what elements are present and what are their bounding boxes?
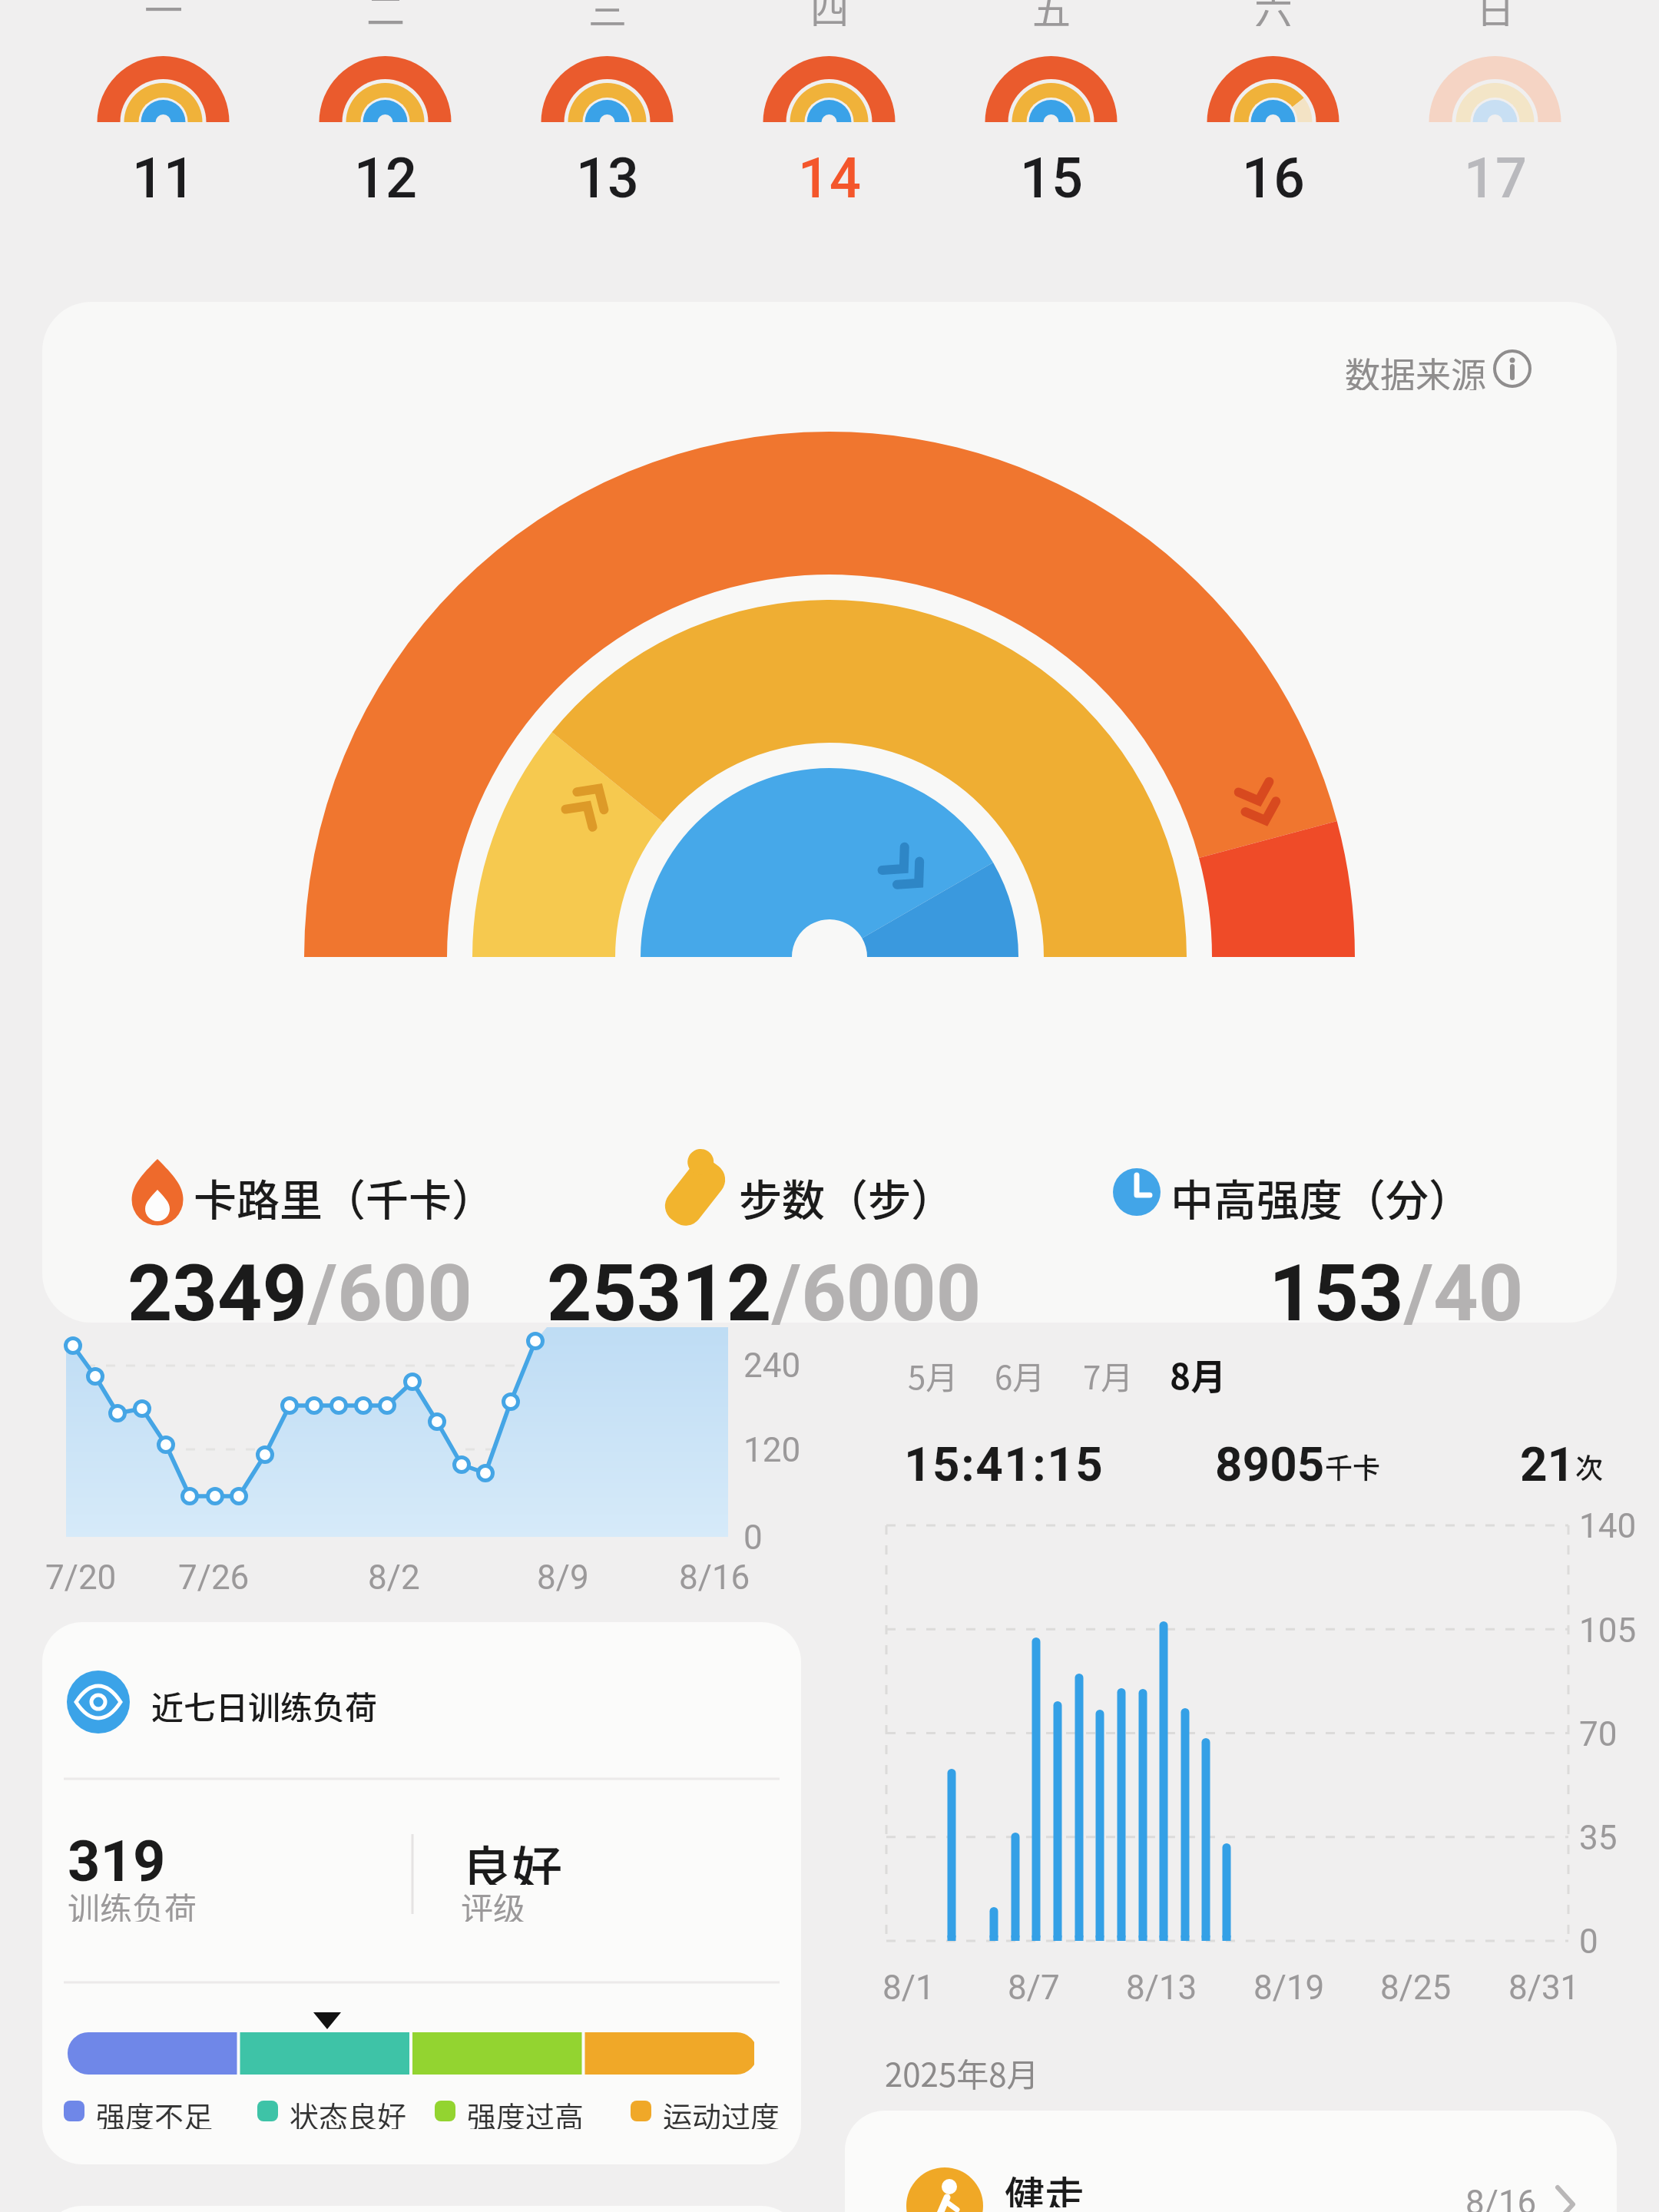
staticText: 运动过度 xyxy=(663,2094,780,2129)
staticText: 8905 xyxy=(1215,1436,1325,1492)
staticText: 15 xyxy=(1020,146,1083,210)
staticText: 140 xyxy=(1579,1506,1637,1545)
staticText: 千卡 xyxy=(1325,1446,1381,1486)
button[interactable] xyxy=(940,0,1162,223)
staticText: 2025年8月 xyxy=(885,2049,1039,2095)
staticText: 一 xyxy=(144,0,183,26)
button[interactable] xyxy=(879,1344,987,1406)
staticText: 14 xyxy=(798,146,861,210)
staticText: 8/16 xyxy=(679,1558,750,1598)
staticText: 训练负荷 xyxy=(68,1883,197,1922)
staticText: 21 xyxy=(1520,1436,1575,1492)
staticText: 0 xyxy=(743,1518,763,1556)
staticText: 中高强度（分） xyxy=(1171,1166,1472,1220)
staticText: 12 xyxy=(354,146,417,210)
staticText: /40 xyxy=(1404,1247,1524,1339)
button[interactable] xyxy=(718,0,940,223)
staticText: 16 xyxy=(1242,146,1305,210)
staticText: 五 xyxy=(1032,0,1071,26)
staticText: 8/31 xyxy=(1508,1968,1580,2008)
staticText: 11 xyxy=(132,146,195,210)
button[interactable] xyxy=(274,0,496,223)
staticText: 卡路里（千卡） xyxy=(194,1166,495,1220)
staticText: 六 xyxy=(1254,0,1293,26)
button[interactable] xyxy=(1306,338,1544,399)
staticText: 8月 xyxy=(1170,1349,1227,1399)
staticText: 2349 xyxy=(127,1247,308,1339)
staticText: 三 xyxy=(588,0,627,26)
staticText: /6000 xyxy=(772,1247,982,1339)
staticText: 319 xyxy=(68,1828,166,1886)
staticText: 7月 xyxy=(1083,1352,1134,1399)
staticText: 近七日训练负荷 xyxy=(151,1682,378,1722)
staticText: 8/16 xyxy=(1465,2183,1537,2212)
staticText: 强度过高 xyxy=(467,2094,584,2129)
button[interactable] xyxy=(1162,0,1384,223)
staticText: 25312 xyxy=(547,1247,772,1339)
staticText: 7/26 xyxy=(178,1558,250,1598)
button[interactable] xyxy=(52,0,274,223)
button[interactable] xyxy=(496,0,718,223)
button[interactable] xyxy=(966,1344,1074,1406)
button[interactable] xyxy=(42,1622,801,2164)
staticText: 35 xyxy=(1579,1818,1618,1856)
button[interactable] xyxy=(1384,0,1606,223)
staticText: 二 xyxy=(366,0,405,26)
staticText: 8/9 xyxy=(537,1558,589,1598)
button[interactable] xyxy=(845,2111,1617,2212)
staticText: 健走 xyxy=(1005,2164,1085,2207)
staticText: 240 xyxy=(743,1346,801,1384)
staticText: 70 xyxy=(1579,1714,1618,1753)
staticText: 0 xyxy=(1579,1922,1598,1960)
staticText: 153 xyxy=(1269,1247,1404,1339)
button[interactable] xyxy=(1055,1344,1162,1406)
staticText: 120 xyxy=(743,1430,801,1469)
staticText: 13 xyxy=(576,146,639,210)
staticText: 评级 xyxy=(461,1883,526,1922)
staticText: 次 xyxy=(1575,1446,1604,1486)
staticText: 8/19 xyxy=(1253,1968,1325,2008)
staticText: 步数（步） xyxy=(739,1166,954,1220)
button[interactable] xyxy=(1144,1344,1252,1406)
staticText: 状态良好 xyxy=(290,2094,407,2129)
staticText: 17 xyxy=(1464,146,1527,210)
staticText: 5月 xyxy=(908,1352,959,1399)
staticText: 15:41:15 xyxy=(904,1436,1104,1492)
staticText: 8/7 xyxy=(1008,1968,1060,2008)
staticText: 8/1 xyxy=(882,1968,935,2008)
staticText: 8/13 xyxy=(1126,1968,1197,2008)
staticText: 数据来源 xyxy=(1345,347,1486,390)
staticText: 日 xyxy=(1476,0,1515,26)
staticText: 7/20 xyxy=(45,1558,117,1598)
staticText: 6月 xyxy=(995,1352,1045,1399)
staticText: 四 xyxy=(810,0,849,26)
staticText: 8/2 xyxy=(368,1558,420,1598)
staticText: 强度不足 xyxy=(96,2094,214,2129)
staticText: 8/25 xyxy=(1380,1968,1452,2008)
staticText: 良好 xyxy=(461,1830,562,1885)
staticText: 105 xyxy=(1579,1611,1637,1649)
staticText: /600 xyxy=(308,1247,472,1339)
